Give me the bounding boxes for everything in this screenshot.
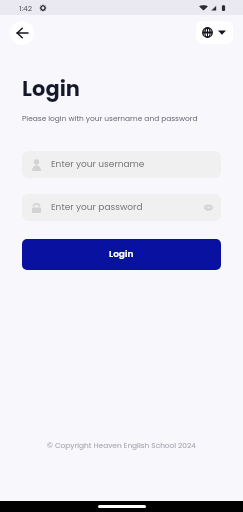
button[interactable]: Enter your password bbox=[22, 194, 221, 221]
staticText: Enter your username bbox=[51, 158, 145, 171]
staticText: Please login with your username and pass… bbox=[22, 113, 198, 123]
button[interactable]: Back bbox=[10, 21, 34, 45]
other: Show password bbox=[204, 204, 213, 211]
staticText: Login bbox=[109, 248, 134, 261]
staticText: 1:42 bbox=[19, 3, 33, 13]
staticText: Login bbox=[22, 74, 81, 103]
button[interactable]: Login bbox=[22, 239, 221, 270]
staticText: © Copyright Heaven English School 2024 bbox=[0, 440, 243, 450]
button[interactable]: Enter your username bbox=[22, 151, 221, 178]
button[interactable]: Change language bbox=[196, 21, 233, 44]
staticText: Enter your password bbox=[51, 201, 143, 214]
